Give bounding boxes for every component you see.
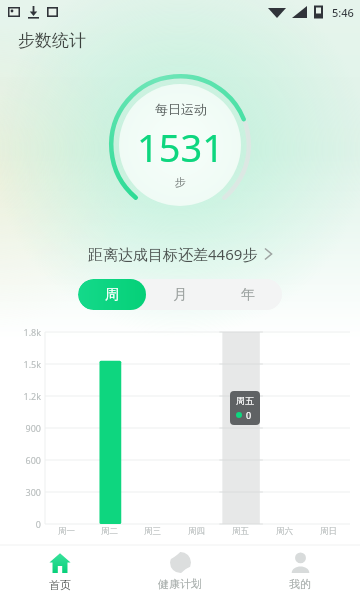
staticText: 1531 xyxy=(137,121,224,173)
staticText: 步 xyxy=(175,175,186,189)
staticText: 1.5k xyxy=(2,358,41,370)
staticText: 900 xyxy=(2,422,41,434)
staticText: 周五 xyxy=(236,395,254,406)
staticText: 1.2k xyxy=(2,390,41,402)
staticText: 0 xyxy=(246,409,252,421)
staticText: 周 xyxy=(105,286,119,304)
staticText: 每日运动 xyxy=(155,101,207,117)
staticText: 健康计划 xyxy=(158,577,202,591)
staticText: 0 xyxy=(2,518,41,530)
staticText: 300 xyxy=(2,486,41,498)
button[interactable]: 我的 xyxy=(240,545,360,600)
staticText: 周二 xyxy=(101,526,118,537)
staticText: 周六 xyxy=(276,526,293,537)
staticText: 首页 xyxy=(49,578,71,592)
button[interactable]: 月 xyxy=(146,279,214,310)
staticText: 5:46 xyxy=(332,5,354,20)
staticText: 周五 xyxy=(232,526,249,537)
button[interactable]: 距离达成目标还差4469步 xyxy=(0,234,360,274)
staticText: 步数统计 xyxy=(18,30,86,51)
button[interactable]: 健康计划 xyxy=(120,545,240,600)
staticText: 我的 xyxy=(289,577,311,591)
staticText: 周三 xyxy=(144,526,161,537)
staticText: 周日 xyxy=(320,526,337,537)
button[interactable]: 年 xyxy=(214,279,282,310)
staticText: 周一 xyxy=(58,526,75,537)
button[interactable]: 首页 xyxy=(0,545,120,600)
staticText: 月 xyxy=(173,286,187,304)
staticText: 距离达成目标还差4469步 xyxy=(88,244,258,264)
button[interactable]: 周 xyxy=(78,279,146,310)
staticText: 年 xyxy=(241,286,255,304)
staticText: 1.8k xyxy=(2,326,41,338)
staticText: 周四 xyxy=(188,526,205,537)
staticText: 600 xyxy=(2,454,41,466)
